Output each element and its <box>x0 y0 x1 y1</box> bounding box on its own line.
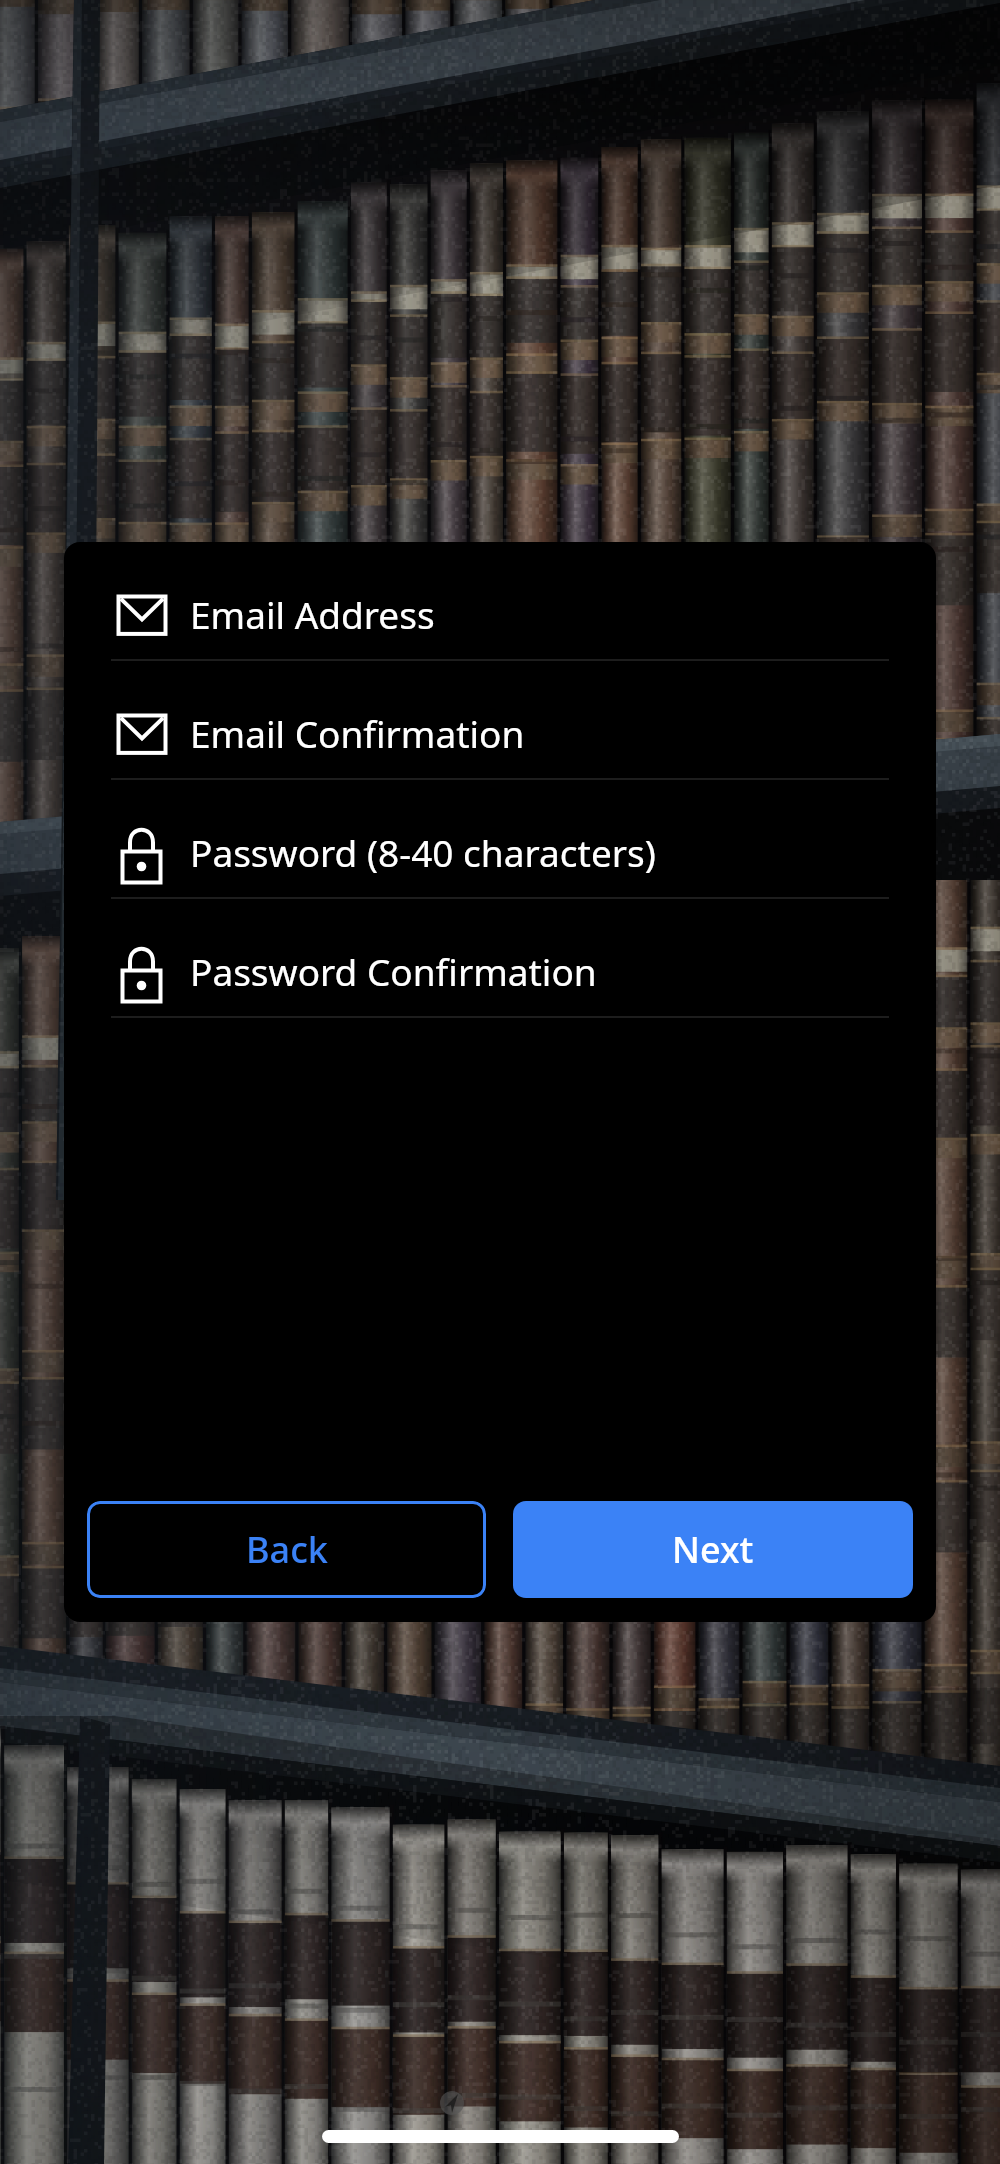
staticText: Back <box>246 1525 328 1574</box>
button[interactable]: Next <box>513 1501 913 1598</box>
staticText: Password (8-40 characters) <box>190 827 656 877</box>
button[interactable]: Password Confirmation <box>111 899 889 1018</box>
staticText: Email Address <box>190 589 435 639</box>
staticText: Email Confirmation <box>190 708 525 758</box>
button[interactable]: Email Confirmation <box>111 661 889 780</box>
staticText: Password Confirmation <box>190 946 597 996</box>
staticText: Next <box>672 1525 754 1574</box>
button[interactable]: Password (8-40 characters) <box>111 780 889 899</box>
button[interactable]: Back <box>87 1501 486 1598</box>
button[interactable]: Email Address <box>111 542 889 661</box>
